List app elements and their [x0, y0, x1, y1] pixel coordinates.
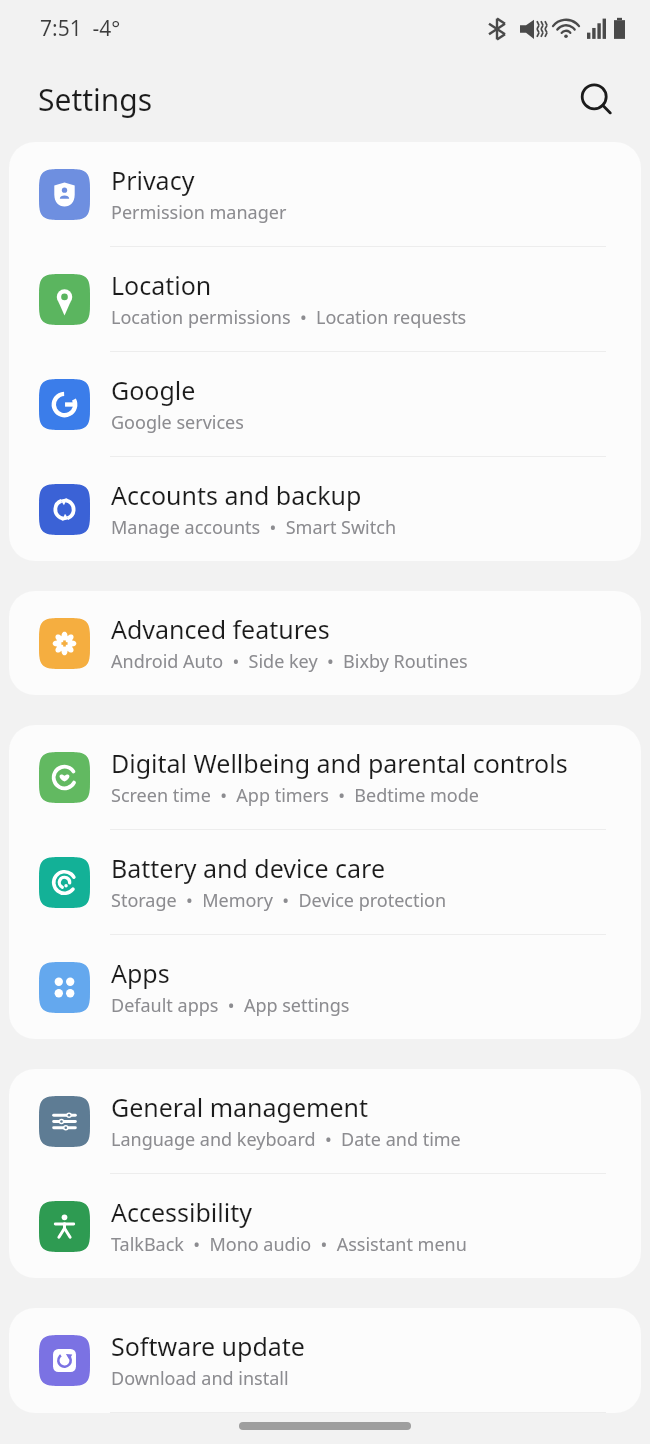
- button[interactable]: Battery and device care: [9, 830, 641, 935]
- staticText: General management: [111, 1090, 368, 1124]
- button[interactable]: Apps: [9, 935, 641, 1039]
- staticText: Location: [111, 268, 212, 302]
- button[interactable]: Google: [9, 352, 641, 457]
- staticText: Android Auto • Side key • Bixby Routines: [111, 649, 468, 674]
- button[interactable]: Digital Wellbeing and parental controls: [9, 725, 641, 830]
- button[interactable]: Accounts and backup: [9, 457, 641, 561]
- staticText: Download and install: [111, 1366, 289, 1391]
- staticText: Software update: [111, 1329, 305, 1363]
- staticText: Advanced features: [111, 612, 330, 646]
- staticText: Apps: [111, 956, 170, 990]
- button[interactable]: Accessibility: [9, 1174, 641, 1278]
- staticText: Manage accounts • Smart Switch: [111, 515, 397, 540]
- staticText: 7:51 -4°: [40, 14, 121, 43]
- staticText: Accounts and backup: [111, 478, 362, 512]
- button[interactable]: Privacy: [9, 142, 641, 247]
- staticText: TalkBack • Mono audio • Assistant menu: [111, 1232, 467, 1257]
- staticText: Digital Wellbeing and parental controls: [111, 746, 568, 780]
- staticText: Google services: [111, 410, 244, 435]
- staticText: Privacy: [111, 163, 195, 197]
- staticText: Storage • Memory • Device protection: [111, 888, 447, 913]
- staticText: Google: [111, 373, 196, 407]
- staticText: Default apps • App settings: [111, 993, 350, 1018]
- staticText: Accessibility: [111, 1195, 252, 1229]
- staticText: Screen time • App timers • Bedtime mode: [111, 783, 479, 808]
- button[interactable]: Software update: [9, 1308, 641, 1413]
- button[interactable]: Advanced features: [9, 591, 641, 695]
- button[interactable]: Location: [9, 247, 641, 352]
- staticText: Settings: [38, 79, 153, 120]
- staticText: Permission manager: [111, 200, 287, 225]
- staticText: Language and keyboard • Date and time: [111, 1127, 461, 1152]
- button[interactable]: Search: [570, 73, 624, 127]
- button[interactable]: General management: [9, 1069, 641, 1174]
- staticText: Location permissions • Location requests: [111, 305, 467, 330]
- staticText: Battery and device care: [111, 851, 386, 885]
